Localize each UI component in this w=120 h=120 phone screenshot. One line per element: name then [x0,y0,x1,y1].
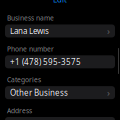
staticText: › [107,86,110,99]
staticText: Edit [53,0,67,5]
staticText: Other Business [10,87,68,98]
staticText: Categories [7,75,41,84]
button[interactable]: Edit [49,0,71,7]
staticText: Phone number [7,44,54,53]
button[interactable]: +1 (478) 595-3575 [5,55,115,68]
button[interactable]: Lana Lewis [5,24,115,37]
staticText: › [107,25,110,37]
staticText: Address [7,106,32,115]
staticText: Business name [7,14,54,22]
staticText: +1 (478) 595-3575 [10,56,81,67]
staticText: Lana Lewis [10,26,49,36]
button[interactable]: Other Business [5,86,115,99]
